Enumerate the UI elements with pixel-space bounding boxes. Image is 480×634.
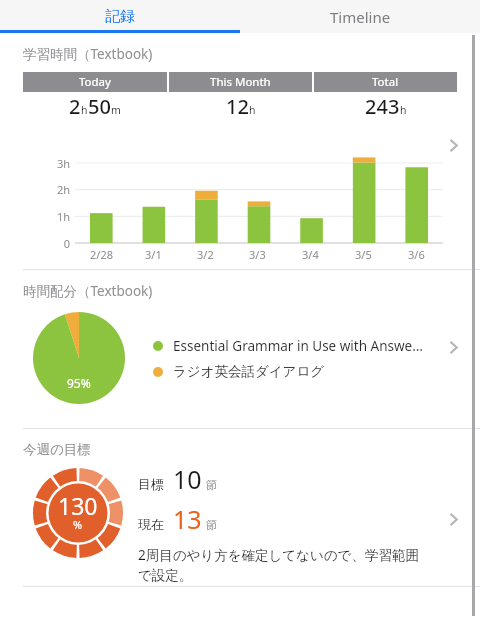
button[interactable]: Next period (439, 131, 467, 159)
staticText: Essential Grammar in Use with Answe… (173, 337, 423, 355)
staticText: h (249, 103, 256, 117)
staticText: 2周目のやり方を確定してないので、学習範囲 で設定。 (138, 546, 419, 584)
button[interactable]: This Month (169, 72, 312, 121)
staticText: h (81, 103, 88, 117)
staticText: 目標 (138, 476, 164, 492)
staticText: 3/1 (145, 247, 162, 262)
staticText: % (73, 517, 83, 532)
staticText: 130 (58, 490, 98, 521)
staticText: 2h (46, 182, 70, 197)
staticText: 0 (46, 236, 70, 251)
staticText: 今週の目標 (23, 441, 91, 458)
button[interactable]: Today (23, 72, 167, 121)
staticText: 13 (173, 502, 202, 536)
staticText: 3/2 (197, 247, 214, 262)
staticText: 2 (69, 93, 81, 120)
staticText: 3/6 (408, 247, 425, 262)
staticText: 記録 (105, 7, 135, 26)
staticText: 50 (88, 93, 111, 120)
button[interactable]: Goal detail (439, 505, 467, 533)
staticText: 10 (173, 462, 202, 496)
staticText: 3/5 (355, 247, 372, 262)
staticText: 節 (206, 478, 218, 492)
staticText: This Month (210, 74, 271, 90)
staticText: m (111, 103, 121, 117)
staticText: 12 (226, 93, 249, 120)
staticText: h (400, 103, 407, 117)
staticText: Total (372, 74, 399, 90)
button[interactable]: 95% (33, 312, 125, 404)
staticText: 学習時間（Textbook) (23, 45, 153, 63)
staticText: 3h (46, 156, 70, 171)
button[interactable]: Total (314, 72, 457, 121)
staticText: Today (79, 74, 111, 90)
button[interactable]: Timeline (240, 0, 480, 33)
staticText: 節 (206, 518, 218, 532)
staticText: Timeline (330, 7, 391, 27)
button[interactable]: 記録 (0, 0, 240, 33)
button[interactable]: 130 (33, 468, 123, 558)
button[interactable]: ラジオ英会話ダイアログ (153, 363, 325, 380)
staticText: 3/4 (302, 247, 319, 262)
staticText: 243 (365, 93, 400, 120)
staticText: 現在 (138, 516, 164, 532)
staticText: 95% (67, 375, 91, 391)
staticText: 3/3 (249, 247, 266, 262)
button[interactable]: Essential Grammar in Use with Answe… (153, 337, 423, 355)
staticText: 2/28 (90, 247, 113, 262)
staticText: 時間配分（Textbook) (23, 282, 153, 300)
staticText: ラジオ英会話ダイアログ (173, 363, 325, 380)
staticText: 1h (46, 209, 70, 224)
button[interactable]: Breakdown detail (439, 333, 467, 361)
